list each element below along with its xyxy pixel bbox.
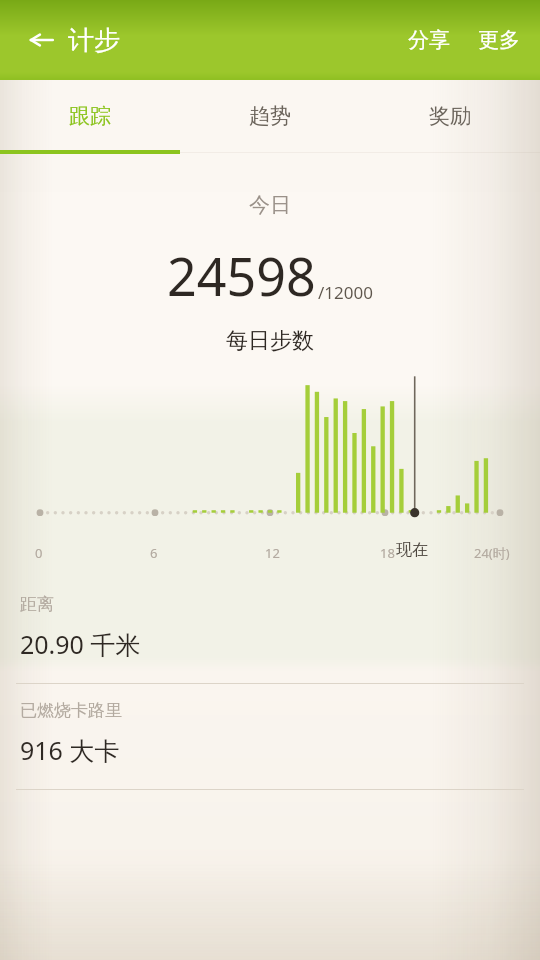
staticText: 20.90 千米 xyxy=(20,627,141,661)
staticText: 6 xyxy=(150,544,158,562)
button[interactable]: 返回 xyxy=(20,19,62,61)
staticText: 0 xyxy=(35,544,43,562)
button[interactable]: 已燃烧卡路里 xyxy=(0,684,540,789)
button[interactable]: 趋势 xyxy=(180,80,360,152)
staticText: 24598 xyxy=(167,240,316,311)
staticText: /12000 xyxy=(318,281,373,304)
button[interactable]: 计步 xyxy=(68,24,120,57)
button[interactable]: 奖励 xyxy=(360,80,540,152)
staticText: 12 xyxy=(265,544,280,562)
staticText: 奖励 xyxy=(429,103,471,129)
button[interactable]: 分享 xyxy=(408,27,450,53)
staticText: 已燃烧卡路里 xyxy=(20,700,122,721)
staticText: 18 xyxy=(380,544,395,562)
staticText: 分享 xyxy=(408,27,450,53)
staticText: 距离 xyxy=(20,594,54,615)
button[interactable]: 距离 xyxy=(0,578,540,683)
staticText: 更多 xyxy=(478,27,520,53)
button[interactable]: 跟踪 xyxy=(0,80,180,152)
staticText: 跟踪 xyxy=(69,103,111,129)
staticText: 现在 xyxy=(396,540,428,560)
button[interactable]: 更多 xyxy=(478,27,520,53)
staticText: 916 大卡 xyxy=(20,733,120,767)
staticText: 24(时) xyxy=(474,544,510,562)
staticText: 今日 xyxy=(249,192,291,218)
staticText: 计步 xyxy=(68,24,120,57)
staticText: 每日步数 xyxy=(226,327,314,355)
staticText: 趋势 xyxy=(249,103,291,129)
